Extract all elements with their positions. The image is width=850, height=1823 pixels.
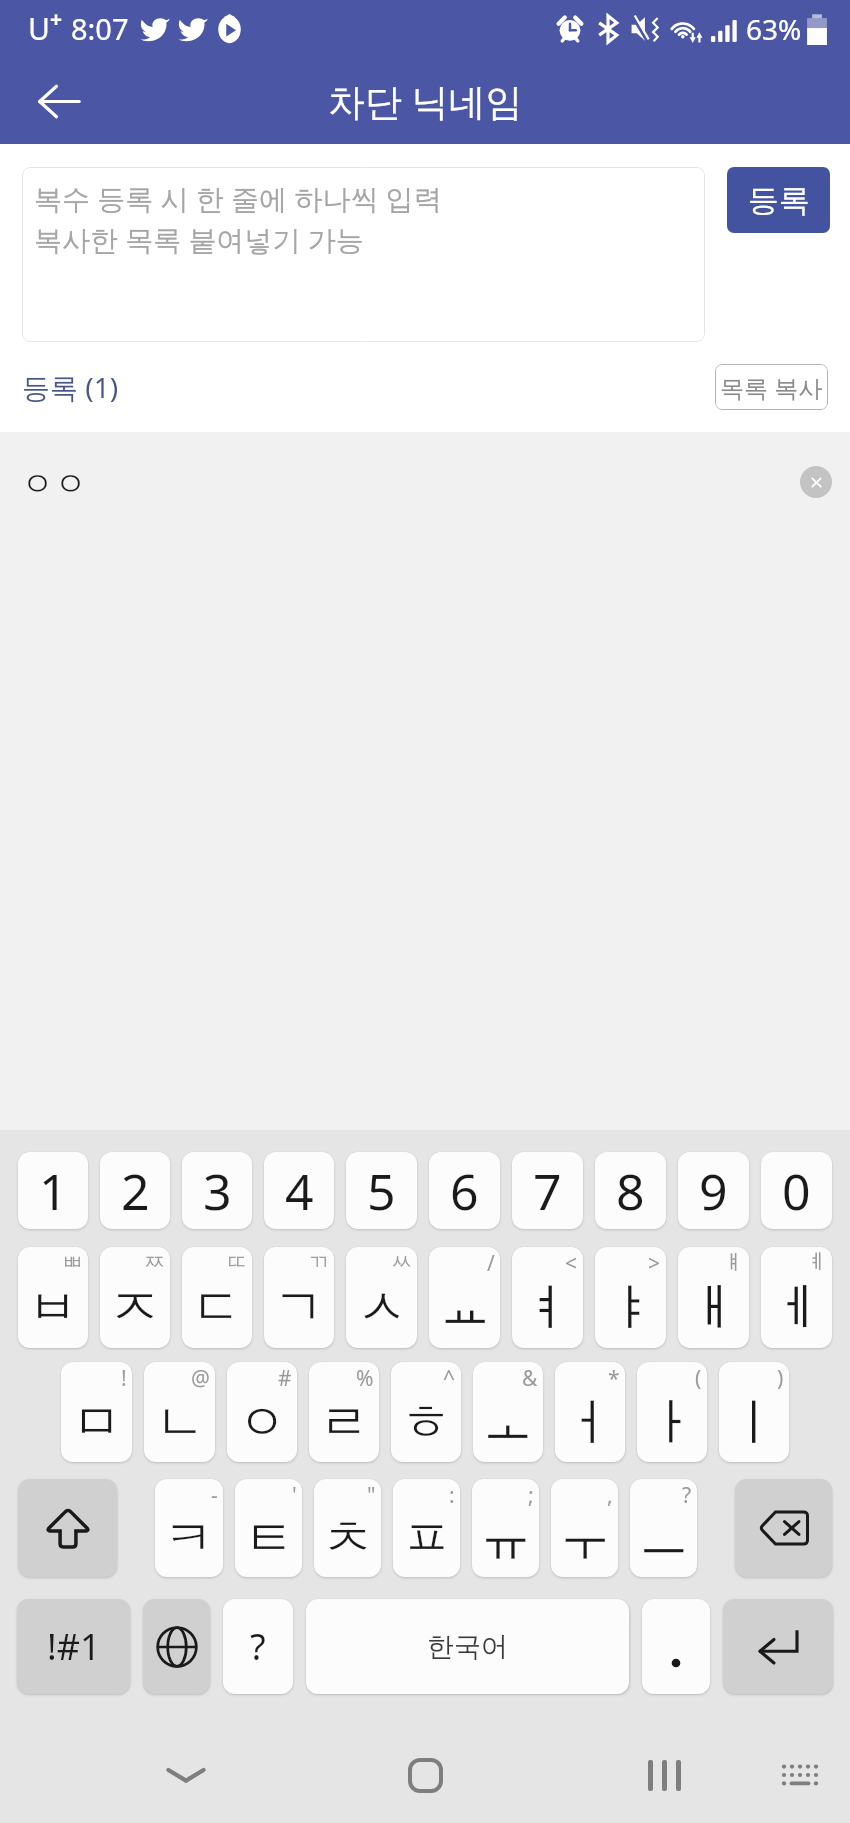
staticText: ㅖ	[806, 1249, 827, 1275]
staticText: ㅕ	[523, 1276, 573, 1339]
button[interactable]: ㅉ	[100, 1247, 170, 1348]
button[interactable]: *	[555, 1362, 625, 1462]
button[interactable]: Hide keyboard	[146, 1735, 226, 1815]
staticText: ㅁ	[72, 1391, 122, 1454]
staticText: >	[648, 1249, 661, 1278]
staticText: @	[191, 1364, 210, 1393]
button[interactable]: 5	[346, 1152, 417, 1229]
button[interactable]: ^	[391, 1362, 461, 1462]
button[interactable]: 6	[429, 1152, 500, 1229]
staticText: 8:07	[71, 9, 129, 48]
staticText: ㄱ	[274, 1276, 324, 1339]
staticText: ;	[528, 1481, 534, 1510]
button[interactable]: 3	[182, 1152, 252, 1229]
button[interactable]: %	[309, 1362, 379, 1462]
staticText: ㅑ	[606, 1276, 656, 1339]
staticText: ㅊ	[323, 1507, 373, 1570]
button[interactable]: Back	[20, 62, 98, 140]
button[interactable]: Period	[642, 1599, 710, 1694]
staticText: 0	[782, 1157, 811, 1225]
staticText: 복수 등록 시 한 줄에 하나씩 입력 복사한 목록 붙여넣기 가능	[34, 179, 442, 258]
staticText: ㅔ	[772, 1276, 822, 1339]
button[interactable]: ㅒ	[678, 1247, 749, 1348]
staticText: -	[211, 1481, 218, 1510]
button[interactable]: !	[61, 1362, 132, 1462]
button[interactable]: )	[719, 1362, 789, 1462]
button[interactable]: 2	[100, 1152, 170, 1229]
staticText: ㄴ	[155, 1391, 205, 1454]
staticText: ㅉ	[144, 1249, 165, 1275]
button[interactable]: (	[637, 1362, 707, 1462]
button[interactable]: <	[512, 1247, 583, 1348]
button[interactable]: 9	[678, 1152, 749, 1229]
staticText: 8	[616, 1157, 645, 1225]
button[interactable]: Enter	[723, 1599, 833, 1694]
staticText: 한국어	[427, 1630, 508, 1664]
staticText: !#1	[47, 1622, 101, 1671]
button[interactable]: 0	[761, 1152, 832, 1229]
staticText: %	[356, 1364, 374, 1393]
button[interactable]: 1	[18, 1152, 88, 1229]
button[interactable]: Delete	[800, 466, 832, 498]
staticText: ㅅ	[357, 1276, 407, 1339]
staticText: ㄸ	[226, 1249, 247, 1275]
staticText: *	[608, 1364, 620, 1393]
button[interactable]: 복수 등록 시 한 줄에 하나씩 입력 복사한 목록 붙여넣기 가능	[22, 167, 705, 342]
button[interactable]: Keyboard	[760, 1735, 840, 1815]
staticText: ㅗ	[483, 1391, 533, 1454]
button[interactable]: ㅃ	[18, 1247, 88, 1348]
button[interactable]: "	[314, 1479, 381, 1577]
staticText: ㅓ	[565, 1391, 615, 1454]
button[interactable]: Language	[143, 1599, 210, 1694]
button[interactable]: -	[155, 1479, 223, 1577]
staticText: 6	[450, 1157, 479, 1225]
staticText: /	[487, 1249, 495, 1278]
button[interactable]: Recents	[624, 1735, 704, 1815]
button[interactable]: ㅆ	[346, 1247, 417, 1348]
staticText: ㅜ	[560, 1507, 610, 1570]
staticText: ?	[250, 1622, 266, 1671]
button[interactable]: ㅖ	[761, 1247, 832, 1348]
staticText: 2	[121, 1157, 150, 1225]
button[interactable]: Shift	[18, 1479, 117, 1577]
button[interactable]: :	[393, 1479, 460, 1577]
staticText: ㅋ	[164, 1507, 214, 1570]
button[interactable]: ?	[630, 1479, 697, 1577]
staticText: ㅆ	[391, 1249, 412, 1275]
button[interactable]: 등록 (1)	[22, 368, 119, 406]
button[interactable]: !#1	[17, 1599, 130, 1694]
staticText: 5	[367, 1157, 396, 1225]
button[interactable]: 목록 복사	[715, 364, 828, 410]
staticText: ㅂ	[28, 1276, 78, 1339]
button[interactable]: ㅇㅇ	[0, 432, 850, 532]
staticText: 7	[533, 1157, 562, 1225]
staticText: ㅃ	[62, 1249, 83, 1275]
button[interactable]: 4	[264, 1152, 334, 1229]
button[interactable]: 8	[595, 1152, 666, 1229]
staticText: ㅍ	[402, 1507, 452, 1570]
button[interactable]: &	[473, 1362, 543, 1462]
staticText: 9	[699, 1157, 728, 1225]
button[interactable]: ㄸ	[182, 1247, 252, 1348]
button[interactable]: Backspace	[735, 1479, 832, 1577]
staticText: ,	[607, 1481, 613, 1510]
staticText: ㅇㅇ	[21, 463, 87, 505]
button[interactable]: /	[429, 1247, 500, 1348]
button[interactable]: 한국어	[306, 1599, 629, 1694]
staticText: 4	[285, 1157, 314, 1225]
button[interactable]: >	[595, 1247, 666, 1348]
button[interactable]: ?	[223, 1599, 293, 1694]
staticText: ㅡ	[639, 1507, 689, 1570]
button[interactable]: ㄲ	[264, 1247, 334, 1348]
staticText: ㅏ	[647, 1391, 697, 1454]
staticText: ㅎ	[401, 1391, 451, 1454]
button[interactable]: @	[144, 1362, 215, 1462]
button[interactable]: '	[235, 1479, 302, 1577]
button[interactable]: 등록	[727, 167, 830, 233]
button[interactable]: #	[227, 1362, 297, 1462]
staticText: ㄲ	[308, 1249, 329, 1275]
button[interactable]: ,	[551, 1479, 618, 1577]
button[interactable]: 7	[512, 1152, 583, 1229]
button[interactable]: Home	[385, 1735, 465, 1815]
button[interactable]: ;	[472, 1479, 539, 1577]
